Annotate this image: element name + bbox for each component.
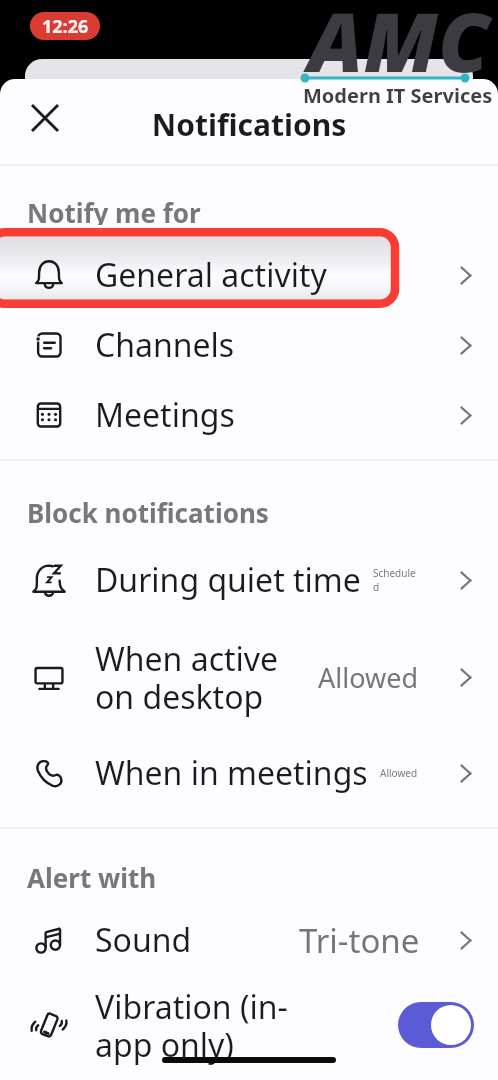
staticText: General activity — [95, 253, 327, 297]
staticText: Meetings — [95, 393, 235, 437]
staticText: Channels — [95, 323, 235, 367]
staticText: Tri-tone — [299, 918, 420, 963]
staticText: AMC — [308, 0, 490, 96]
staticText: Alert with — [27, 860, 157, 890]
button[interactable]: Sound — [0, 905, 498, 975]
staticText: When in meetings — [95, 751, 368, 795]
staticText: During quiet time — [95, 558, 361, 602]
staticText: Allowed — [380, 766, 418, 780]
button[interactable]: General activity — [0, 240, 498, 310]
staticText: 12:26 — [42, 14, 89, 39]
staticText: Block notifications — [27, 495, 269, 525]
staticText: Allowed — [318, 659, 419, 696]
staticText: Notifications — [0, 104, 498, 145]
button[interactable]: During quiet time — [0, 545, 498, 615]
button[interactable]: Close — [24, 97, 66, 139]
staticText: Modern IT Services — [303, 82, 493, 109]
button[interactable]: Vibration (in-app only) — [0, 977, 498, 1073]
staticText: Scheduled — [373, 566, 417, 594]
staticText: Vibration (in-app only) — [95, 985, 295, 1066]
button[interactable]: When in meetings — [0, 738, 498, 808]
button[interactable]: Vibration toggle — [398, 1002, 474, 1048]
staticText: When active on desktop — [95, 637, 295, 718]
button[interactable]: Channels — [0, 310, 498, 380]
staticText: Sound — [95, 918, 192, 962]
staticText: Notify me for — [27, 195, 201, 225]
button[interactable]: When active on desktop — [0, 629, 498, 725]
button[interactable]: Meetings — [0, 380, 498, 450]
